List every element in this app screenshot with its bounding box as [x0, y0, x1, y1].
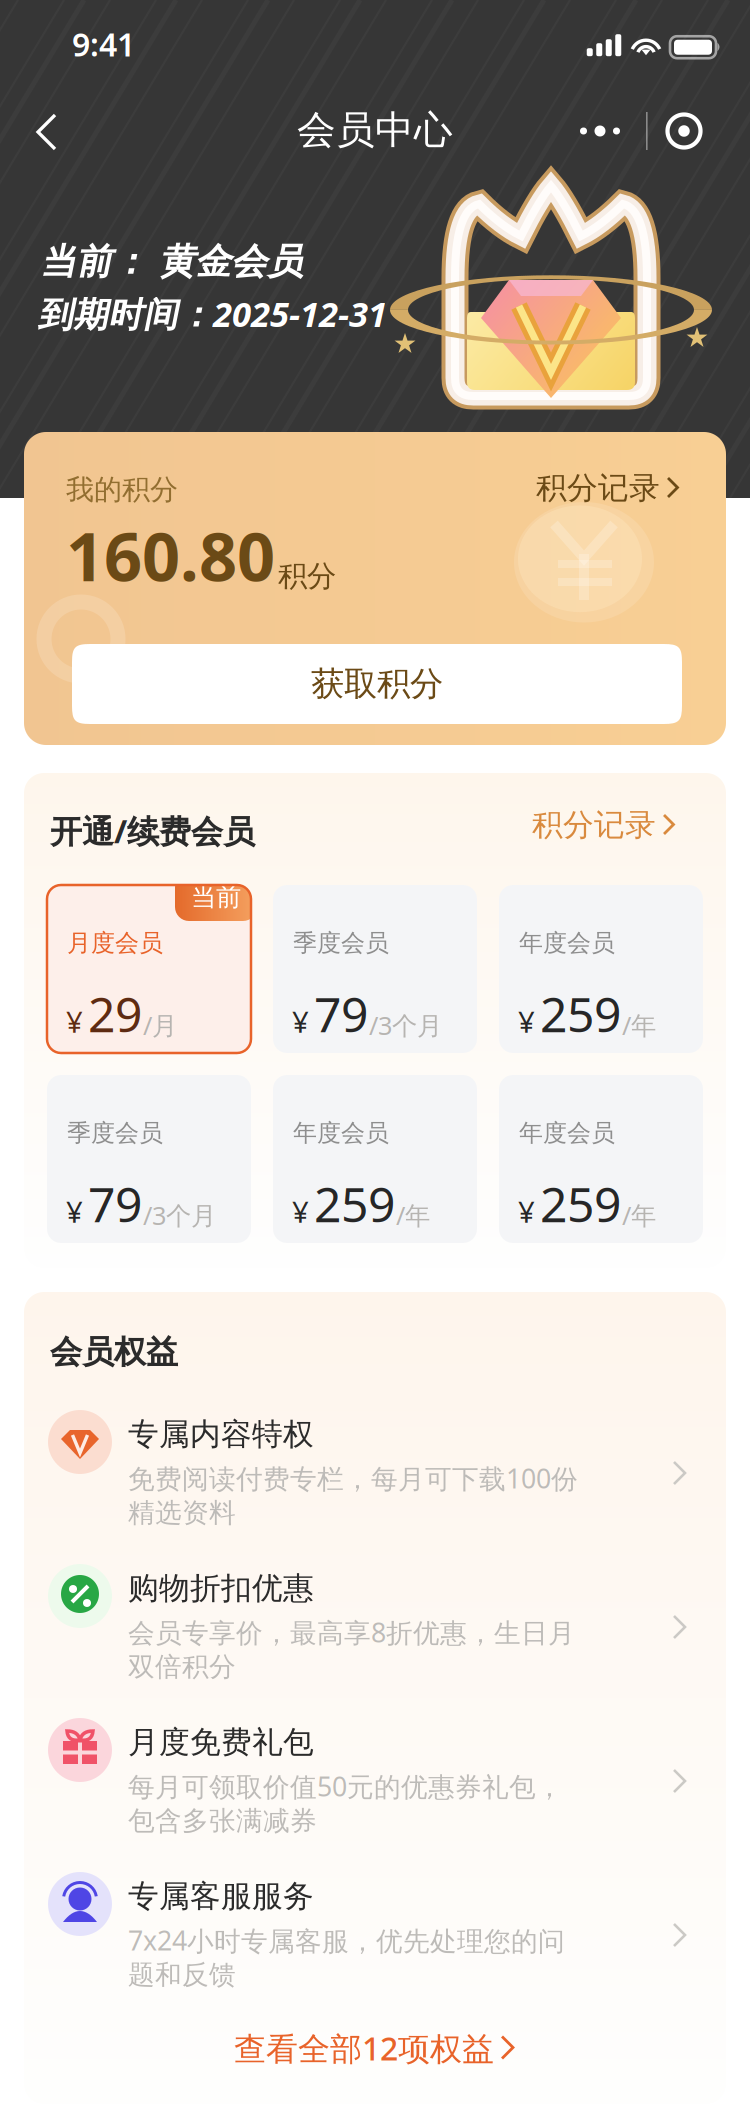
staticText: 259 — [314, 1171, 395, 1236]
staticText: 我的积分 — [66, 472, 178, 507]
staticText: 季度会员 — [293, 928, 389, 958]
button[interactable]: 查看全部12项权益 — [24, 2016, 726, 2080]
staticText: 当前 — [191, 881, 241, 913]
button[interactable]: 购物折扣优惠 — [24, 1554, 726, 1708]
staticText: 年度会员 — [519, 1118, 615, 1148]
button[interactable]: 年度会员 — [499, 1075, 703, 1243]
staticText: 免费阅读付费专栏，每月可下载100份 — [128, 1460, 578, 1496]
staticText: 年度会员 — [519, 928, 615, 958]
staticText: ¥ — [518, 1001, 535, 1041]
staticText: 专属客服服务 — [128, 1877, 314, 1916]
staticText: 会员专享价，最高享8折优惠，生日月 — [128, 1614, 575, 1650]
staticText: 到期时间：2025-12-31 — [38, 290, 387, 337]
staticText: 查看全部12项权益 — [234, 2026, 494, 2070]
staticText: ¥ — [518, 1191, 535, 1231]
staticText: 会员中心 — [297, 106, 453, 154]
staticText: 79 — [88, 1171, 142, 1236]
button[interactable]: 专属客服服务 — [24, 1862, 726, 2016]
staticText: 月度免费礼包 — [128, 1723, 314, 1762]
button[interactable]: 月度免费礼包 — [24, 1708, 726, 1862]
staticText: 当前： 黄金会员 — [40, 239, 303, 284]
staticText: 积分 — [278, 558, 336, 595]
button[interactable]: 季度会员 — [273, 885, 477, 1053]
button[interactable]: 当前 — [47, 885, 251, 1053]
staticText: 79 — [314, 981, 368, 1046]
staticText: /年 — [396, 1198, 430, 1232]
staticText: 160.80 — [66, 510, 275, 601]
staticText: ¥ — [66, 1001, 83, 1041]
staticText: 年度会员 — [293, 1118, 389, 1148]
staticText: 包含多张满减券 — [128, 1804, 317, 1838]
staticText: ¥ — [66, 1191, 83, 1231]
staticText: 季度会员 — [67, 1118, 163, 1148]
staticText: /3个月 — [143, 1198, 216, 1232]
staticText: 会员权益 — [50, 1332, 178, 1372]
staticText: /3个月 — [369, 1008, 442, 1042]
staticText: ¥ — [292, 1001, 309, 1041]
button[interactable]: 年度会员 — [273, 1075, 477, 1243]
staticText: 7x24小时专属客服，优先处理您的问 — [128, 1922, 565, 1958]
staticText: 专属内容特权 — [128, 1415, 314, 1454]
button[interactable]: Back — [11, 106, 81, 158]
staticText: 购物折扣优惠 — [128, 1569, 314, 1608]
staticText: ¥ — [292, 1191, 309, 1231]
button[interactable]: More options — [568, 107, 632, 155]
button[interactable]: Close — [656, 107, 712, 155]
staticText: 获取积分 — [311, 663, 443, 705]
staticText: 月度会员 — [67, 928, 163, 958]
button[interactable]: 积分记录 — [532, 805, 676, 845]
staticText: /月 — [143, 1008, 177, 1042]
staticText: /年 — [622, 1008, 656, 1042]
staticText: 259 — [540, 981, 621, 1046]
button[interactable]: 获取积分 — [72, 644, 682, 724]
staticText: 题和反馈 — [128, 1958, 236, 1992]
staticText: 双倍积分 — [128, 1650, 236, 1684]
staticText: 9:41 — [72, 22, 135, 66]
button[interactable]: 季度会员 — [47, 1075, 251, 1243]
button[interactable]: 专属内容特权 — [24, 1400, 726, 1554]
staticText: /年 — [622, 1198, 656, 1232]
staticText: 积分记录 — [536, 469, 660, 507]
staticText: 29 — [88, 981, 142, 1046]
staticText: 精选资料 — [128, 1496, 236, 1530]
staticText: 每月可领取价值50元的优惠券礼包， — [128, 1768, 563, 1804]
staticText: 开通/续费会员 — [50, 809, 255, 853]
staticText: 积分记录 — [532, 806, 656, 844]
button[interactable]: 积分记录 — [536, 468, 680, 508]
staticText: 259 — [540, 1171, 621, 1236]
button[interactable]: 年度会员 — [499, 885, 703, 1053]
